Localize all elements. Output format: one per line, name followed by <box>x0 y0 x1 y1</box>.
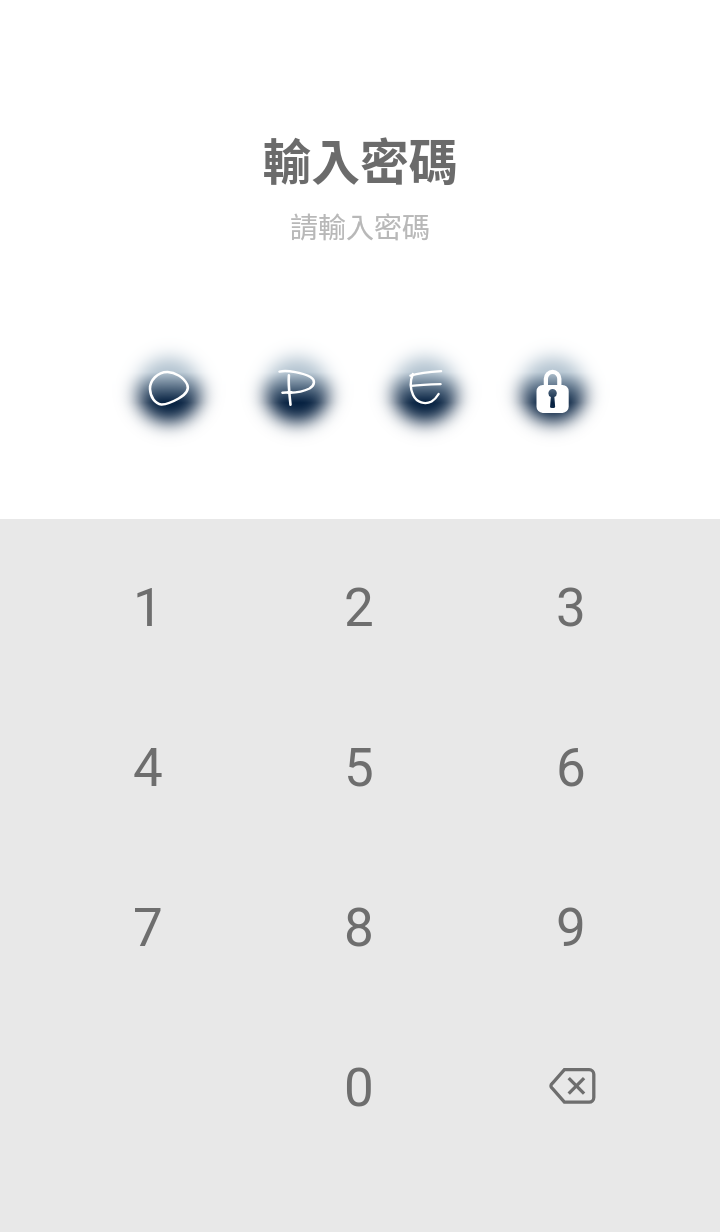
button[interactable]: 3 <box>516 553 626 663</box>
button[interactable]: 9 <box>516 873 626 983</box>
staticText: 3 <box>556 577 586 639</box>
staticText: 4 <box>133 737 163 799</box>
button[interactable]: 6 <box>516 713 626 823</box>
staticText: 1 <box>133 577 163 639</box>
staticText: 9 <box>556 897 586 959</box>
button[interactable]: Backspace <box>516 1033 626 1143</box>
button[interactable]: 7 <box>93 873 203 983</box>
staticText: 6 <box>556 737 586 799</box>
button[interactable]: 4 <box>93 713 203 823</box>
staticText: 2 <box>344 577 374 639</box>
button[interactable]: 0 <box>304 1033 414 1143</box>
staticText: 請輸入密碼 <box>0 206 720 247</box>
staticText: 8 <box>344 897 374 959</box>
staticText: 輸入密碼 <box>0 123 720 194</box>
button[interactable]: 1 <box>93 553 203 663</box>
staticText: 5 <box>344 737 374 799</box>
staticText: 7 <box>133 897 163 959</box>
staticText: 0 <box>344 1057 374 1119</box>
button[interactable]: 2 <box>304 553 414 663</box>
button[interactable]: 5 <box>304 713 414 823</box>
button[interactable]: 8 <box>304 873 414 983</box>
